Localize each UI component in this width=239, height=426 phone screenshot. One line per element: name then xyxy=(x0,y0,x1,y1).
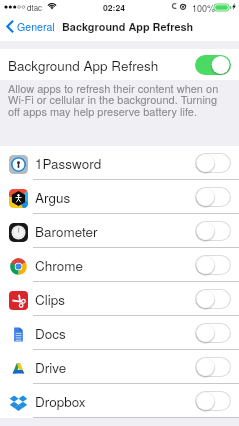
button[interactable] xyxy=(195,323,231,343)
button[interactable]: Dropbox xyxy=(0,384,239,418)
button[interactable] xyxy=(195,187,231,207)
staticText: General xyxy=(17,19,55,34)
button[interactable] xyxy=(195,357,231,377)
staticText: 1Password xyxy=(35,154,102,173)
button[interactable]: 1Password xyxy=(0,146,239,180)
button[interactable]: Docs xyxy=(0,316,239,350)
staticText: Allow apps to refresh their content when… xyxy=(8,80,231,119)
staticText: Docs xyxy=(35,324,66,343)
staticText: 100% xyxy=(192,2,216,15)
staticText: Argus xyxy=(35,188,71,207)
staticText: 02:24 xyxy=(103,1,125,13)
staticText: Chrome xyxy=(35,256,83,275)
button[interactable]: Chrome xyxy=(0,248,239,282)
staticText: Barometer xyxy=(35,222,98,241)
staticText: Drive xyxy=(35,358,67,377)
button[interactable] xyxy=(195,289,231,309)
staticText: Dropbox xyxy=(35,392,86,411)
button[interactable]: Clips xyxy=(0,282,239,316)
staticText: Clips xyxy=(35,290,65,309)
button[interactable]: Argus xyxy=(0,180,239,214)
button[interactable] xyxy=(195,221,231,241)
button[interactable]: Barometer xyxy=(0,214,239,248)
button[interactable]: Background App Refresh xyxy=(0,49,239,80)
button[interactable] xyxy=(195,153,231,173)
staticText: Background App Refresh xyxy=(8,56,159,75)
staticText: dtac xyxy=(27,2,43,13)
button[interactable] xyxy=(195,255,231,275)
staticText: Background App Refresh xyxy=(62,19,194,35)
button[interactable] xyxy=(195,391,231,411)
button[interactable] xyxy=(195,55,231,75)
button[interactable]: Back to General xyxy=(3,16,60,37)
button[interactable]: Drive xyxy=(0,350,239,384)
